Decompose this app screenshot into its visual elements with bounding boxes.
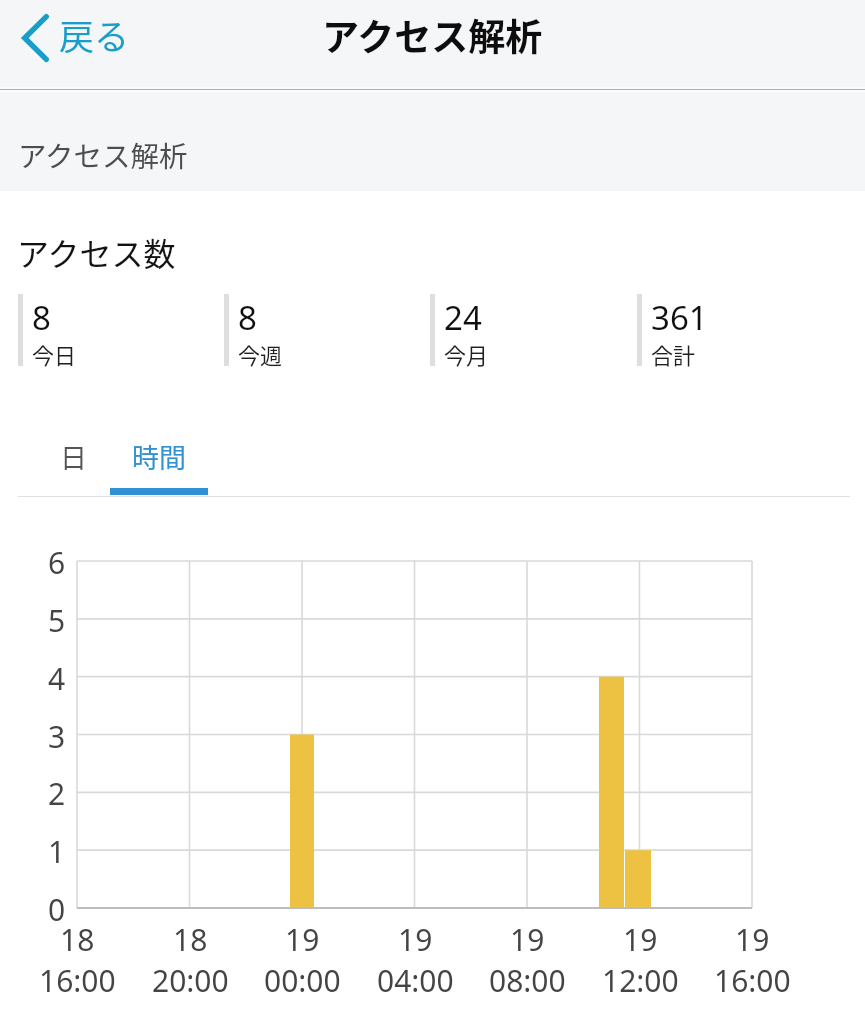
staticText: 1 (48, 831, 66, 872)
staticText: 8 (238, 295, 257, 340)
staticText: 19 (735, 919, 770, 960)
staticText: 合計 (651, 338, 696, 370)
staticText: 19 (510, 919, 545, 960)
staticText: 戻る (59, 9, 130, 60)
button[interactable]: 24 (430, 294, 637, 371)
staticText: 19 (285, 919, 320, 960)
staticText: 時間 (132, 437, 186, 476)
staticText: 19 (398, 919, 433, 960)
staticText: 4 (48, 658, 66, 699)
staticText: 3 (48, 716, 66, 757)
staticText: 6 (48, 542, 66, 583)
staticText: アクセス数 (17, 229, 176, 275)
button[interactable]: 361 (637, 294, 844, 371)
staticText: 361 (651, 295, 708, 340)
button[interactable]: 戻る (Back) (0, 0, 151, 82)
staticText: 24 (444, 295, 482, 340)
staticText: 8 (32, 295, 51, 340)
button[interactable]: 8 (18, 294, 224, 371)
staticText: 今日 (32, 338, 77, 370)
button[interactable]: 日 (32, 437, 115, 499)
staticText: 18 (173, 919, 208, 960)
staticText: 12:00 (602, 960, 679, 1001)
staticText: 00:00 (264, 960, 341, 1001)
staticText: 2 (48, 773, 66, 814)
staticText: 04:00 (377, 960, 454, 1001)
staticText: 今月 (444, 338, 489, 370)
staticText: 18 (60, 919, 95, 960)
staticText: 19 (623, 919, 658, 960)
staticText: 08:00 (489, 960, 566, 1001)
staticText: 5 (48, 600, 66, 641)
staticText: 16:00 (39, 960, 116, 1001)
staticText: 今週 (238, 338, 283, 370)
staticText: アクセス解析 (18, 134, 188, 175)
staticText: 16:00 (714, 960, 791, 1001)
button[interactable]: 時間 (110, 437, 208, 499)
button[interactable]: 8 (224, 294, 430, 371)
staticText: 0 (48, 889, 66, 930)
staticText: 20:00 (152, 960, 229, 1001)
staticText: 日 (60, 437, 87, 476)
staticText: アクセス解析 (322, 8, 543, 62)
